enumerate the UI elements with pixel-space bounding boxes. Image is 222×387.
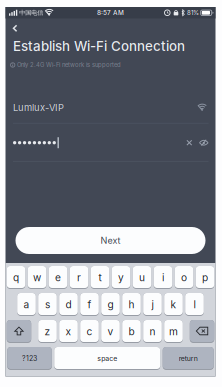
button[interactable]: Choose Wi-Fi network <box>198 104 206 111</box>
button[interactable]: b <box>122 320 141 343</box>
button[interactable]: v <box>101 320 120 343</box>
staticText: q <box>13 271 19 284</box>
staticText: r <box>77 271 81 284</box>
staticText: t <box>98 271 101 284</box>
button[interactable]: d <box>59 293 78 316</box>
staticText: return <box>179 354 198 363</box>
staticText: o <box>181 271 187 284</box>
staticText: u <box>139 271 145 284</box>
button[interactable]: n <box>143 320 162 343</box>
staticText: m <box>169 325 178 338</box>
staticText: e <box>55 271 61 284</box>
button[interactable]: w <box>28 266 46 289</box>
staticText: Lumlux-VIP <box>13 102 64 113</box>
staticText: Next <box>100 235 120 246</box>
staticText: k <box>170 298 176 311</box>
button[interactable]: p <box>196 266 214 289</box>
button[interactable]: y <box>112 266 130 289</box>
staticText: c <box>86 325 92 338</box>
button[interactable]: i <box>154 266 172 289</box>
button[interactable]: Show password <box>199 139 208 146</box>
staticText: y <box>118 271 124 284</box>
staticText: v <box>107 325 113 338</box>
staticText: i <box>162 271 164 284</box>
button[interactable]: t <box>91 266 109 289</box>
staticText: Establish Wi-Fi Connection <box>13 38 185 54</box>
staticText: l <box>193 298 195 311</box>
button[interactable]: q <box>7 266 25 289</box>
staticText: a <box>23 298 29 311</box>
button[interactable]: u <box>133 266 151 289</box>
button[interactable]: Delete <box>190 320 214 343</box>
staticText: space <box>97 354 117 363</box>
staticText: w <box>33 271 41 284</box>
staticText: 中国电信 <box>19 9 43 17</box>
staticText: b <box>128 325 134 338</box>
staticText: x <box>65 325 71 338</box>
button[interactable]: x <box>59 320 78 343</box>
button[interactable]: k <box>164 293 183 316</box>
button[interactable]: m <box>164 320 183 343</box>
button[interactable]: s <box>38 293 57 316</box>
button[interactable]: space <box>54 347 160 370</box>
button[interactable]: ?123 <box>7 347 52 370</box>
staticText: Only 2.4G Wi-Fi network is supported <box>17 61 121 68</box>
button[interactable]: r <box>70 266 88 289</box>
button[interactable]: e <box>49 266 67 289</box>
button[interactable]: Shift <box>7 320 31 343</box>
staticText: g <box>107 298 113 311</box>
button[interactable]: c <box>80 320 99 343</box>
staticText: n <box>149 325 155 338</box>
staticText: ?123 <box>22 354 37 363</box>
button[interactable]: z <box>38 320 57 343</box>
button[interactable]: Clear password <box>186 140 192 145</box>
staticText: s <box>45 298 50 311</box>
button[interactable]: return <box>163 347 214 370</box>
staticText: j <box>151 298 153 311</box>
button[interactable]: h <box>122 293 141 316</box>
staticText: f <box>87 298 91 311</box>
button[interactable]: a <box>17 293 36 316</box>
staticText: d <box>65 298 71 311</box>
button[interactable]: Next <box>15 227 205 254</box>
staticText: 81% <box>187 9 199 16</box>
button[interactable]: g <box>101 293 120 316</box>
button[interactable]: l <box>185 293 204 316</box>
staticText: z <box>44 325 50 338</box>
button[interactable]: j <box>143 293 162 316</box>
staticText: p <box>202 271 208 284</box>
staticText: 8:57 AM <box>97 9 124 17</box>
button[interactable]: f <box>80 293 99 316</box>
staticText: h <box>128 298 134 311</box>
button[interactable]: o <box>175 266 193 289</box>
button[interactable]: Back <box>13 24 17 32</box>
